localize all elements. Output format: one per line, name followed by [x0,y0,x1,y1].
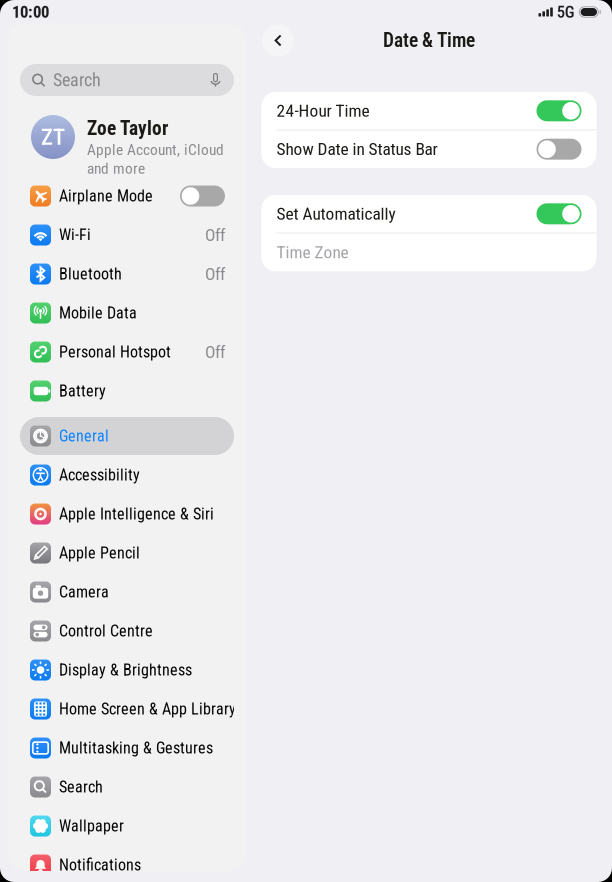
staticText: Airplane Mode [59,187,153,205]
button[interactable]: Apple Pencil [20,534,234,572]
button[interactable]: ZT [8,115,246,177]
staticText: Personal Hotspot [59,343,171,361]
button[interactable]: Time Zone [261,233,596,271]
button[interactable]: Airplane Mode [20,177,234,215]
staticText: Display & Brightness [59,661,192,679]
staticText: Off [205,225,225,245]
staticText: Multitasking & Gestures [59,739,213,757]
staticText: 10:00 [12,2,49,22]
button[interactable]: General [20,417,234,455]
staticText: ZT [41,124,65,150]
staticText: Search [53,69,101,91]
button[interactable]: Mobile Data [20,294,234,332]
button[interactable]: Control Centre [20,612,234,650]
button[interactable]: Accessibility [20,456,234,494]
button[interactable]: Camera [20,573,234,611]
button[interactable]: Search [20,768,234,806]
button[interactable]: Display & Brightness [20,651,234,689]
button[interactable]: Bluetooth [20,255,234,293]
staticText: Off [205,264,225,284]
staticText: Set Automatically [276,204,395,224]
staticText: Home Screen & App Library [59,700,236,718]
button[interactable]: Notifications [20,846,234,882]
button[interactable]: Apple Intelligence & Siri [20,495,234,533]
staticText: Off [205,342,225,362]
button[interactable]: Battery [20,372,234,410]
button[interactable]: Personal Hotspot [20,333,234,371]
staticText: 24-Hour Time [276,101,369,121]
staticText: Wi-Fi [59,226,91,244]
staticText: Date & Time [383,29,475,52]
staticText: Time Zone [276,242,348,262]
staticText: Bluetooth [59,265,122,283]
staticText: 5G [557,2,575,22]
button[interactable]: Search [20,64,234,96]
staticText: Mobile Data [59,304,137,322]
staticText: Apple Intelligence & Siri [59,505,214,523]
staticText: Wallpaper [59,817,124,835]
staticText: Show Date in Status Bar [276,139,437,159]
button[interactable]: Multitasking & Gestures [20,729,234,767]
staticText: Camera [59,583,109,601]
button[interactable]: Back [262,24,294,56]
staticText: Zoe Taylor [87,117,168,140]
button[interactable]: Wi-Fi [20,216,234,254]
button[interactable]: Show Date in Status Bar [261,130,596,168]
button[interactable]: Home Screen & App Library [20,690,234,728]
staticText: Control Centre [59,622,153,640]
staticText: Notifications [59,856,141,874]
staticText: Accessibility [59,466,140,484]
button[interactable]: 24-Hour Time [261,92,596,130]
staticText: Apple Account, iCloud [87,141,224,159]
staticText: Battery [59,382,106,400]
button[interactable]: Wallpaper [20,807,234,845]
button[interactable]: Set Automatically [261,195,596,233]
staticText: Apple Pencil [59,544,140,562]
staticText: General [59,427,109,445]
staticText: Search [59,778,103,796]
staticText: and more [87,160,145,178]
